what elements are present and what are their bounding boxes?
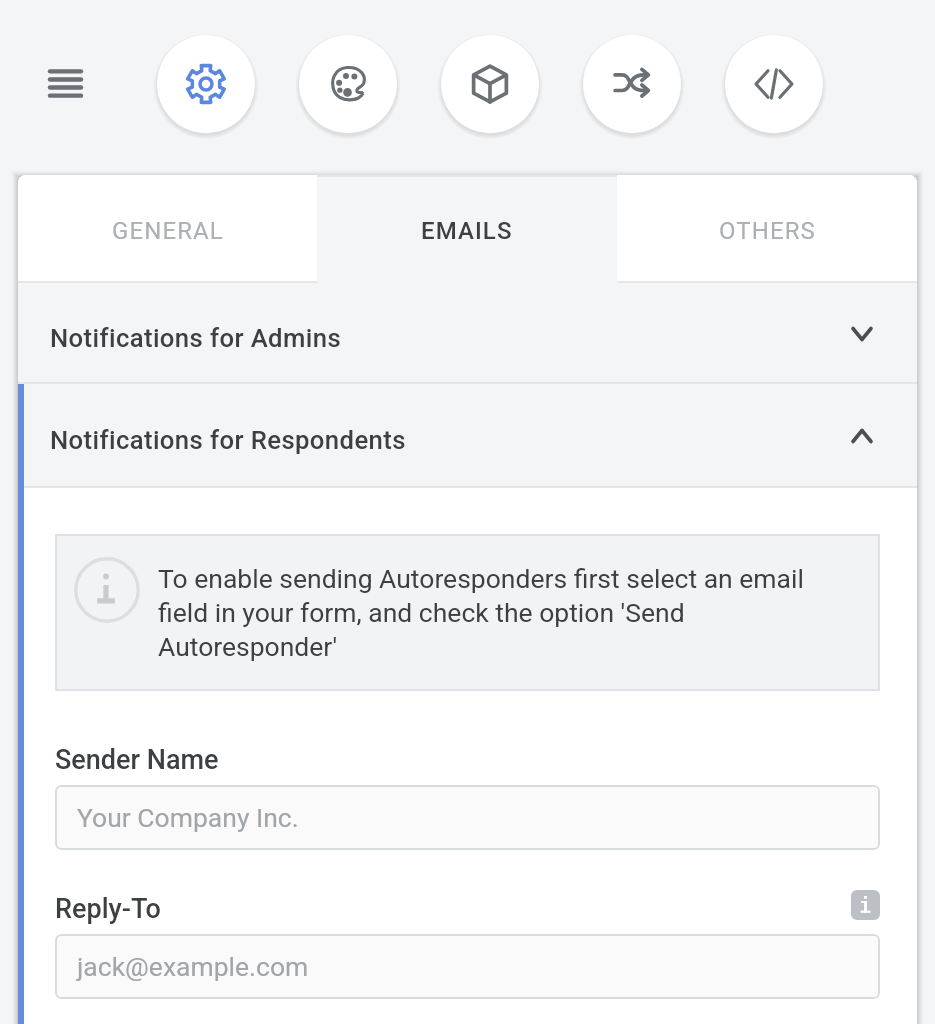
staticText: GENERAL — [112, 217, 224, 245]
staticText: Notifications for Admins — [50, 323, 342, 353]
staticText: To enable sending Autoresponders first s… — [158, 563, 812, 663]
button[interactable]: GENERAL — [18, 175, 317, 283]
button[interactable]: Notifications for Respondents — [18, 384, 917, 488]
staticText: Sender Name — [55, 744, 219, 776]
button[interactable]: Conditional logic — [583, 35, 681, 133]
button[interactable]: Integrations — [441, 35, 539, 133]
staticText: Reply-To — [55, 893, 161, 925]
button[interactable]: Info — [851, 890, 880, 920]
button[interactable]: Your Company Inc. — [55, 785, 880, 850]
button[interactable]: Notifications for Admins — [18, 283, 917, 384]
staticText: Your Company Inc. — [77, 802, 299, 833]
button[interactable]: Settings — [157, 35, 255, 133]
button[interactable]: OTHERS — [617, 175, 917, 283]
staticText: jack@example.com — [77, 951, 309, 982]
button[interactable]: jack@example.com — [55, 934, 880, 999]
button[interactable]: Theme — [299, 35, 397, 133]
button[interactable]: EMAILS — [317, 175, 617, 283]
button[interactable]: Menu — [41, 60, 89, 108]
staticText: OTHERS — [719, 217, 816, 245]
button[interactable]: Embed code — [725, 35, 823, 133]
staticText: Notifications for Respondents — [50, 425, 406, 455]
staticText: EMAILS — [421, 217, 513, 245]
